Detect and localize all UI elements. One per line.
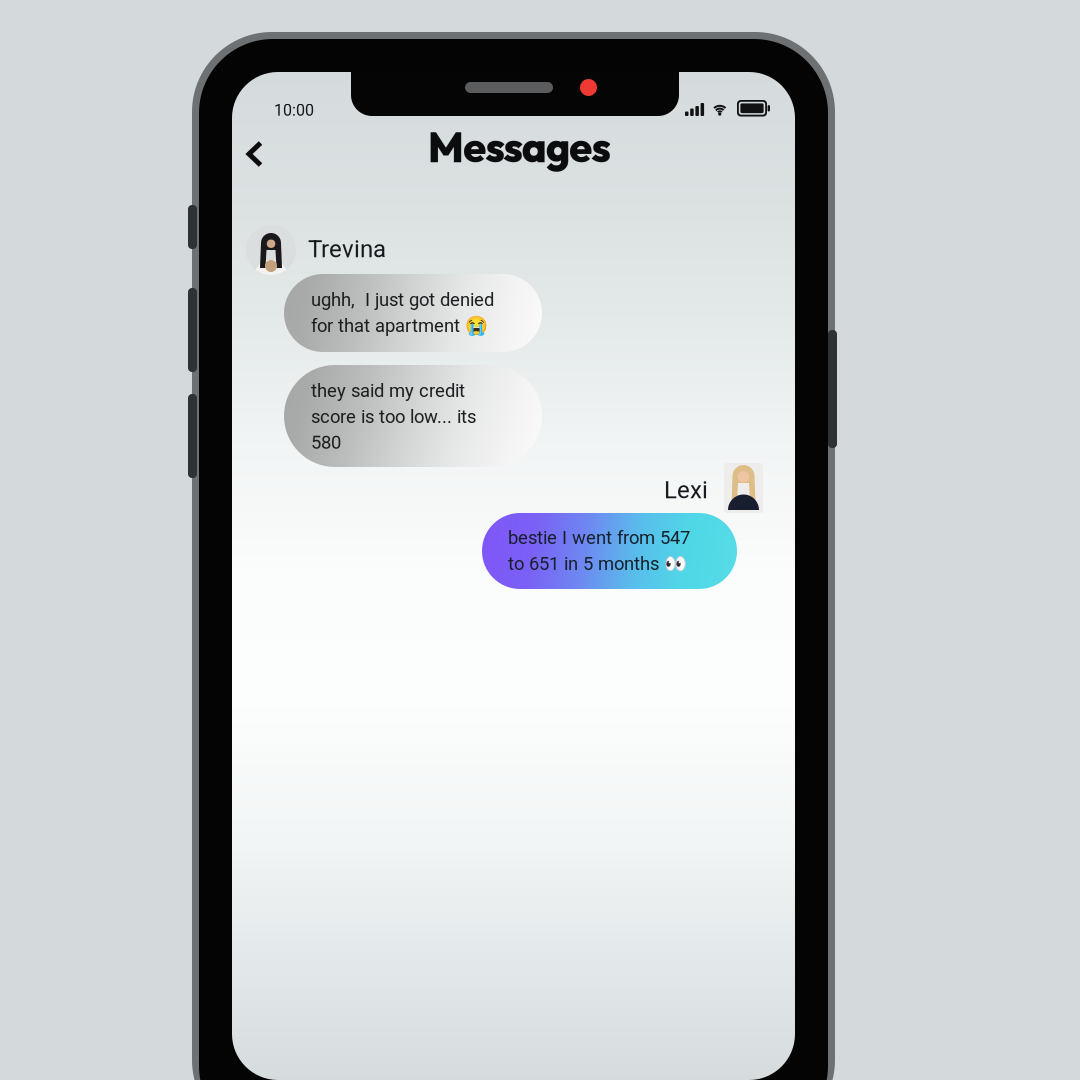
button[interactable]: Back [232, 117, 278, 167]
staticText: 10:00 [274, 101, 314, 120]
staticText: ughh, I just got denied [311, 289, 494, 311]
staticText: for that apartment 😭 [311, 315, 488, 336]
staticText: to 651 in 5 months 👀 [508, 553, 687, 574]
staticText: Trevina [308, 235, 386, 263]
staticText: Lexi [664, 476, 708, 504]
staticText: bestie I went from 547 [508, 527, 690, 549]
staticText: 580 [311, 432, 341, 453]
staticText: they said my credit [311, 380, 465, 402]
staticText: Messages [428, 121, 610, 173]
staticText: score is too low... its [311, 406, 476, 427]
